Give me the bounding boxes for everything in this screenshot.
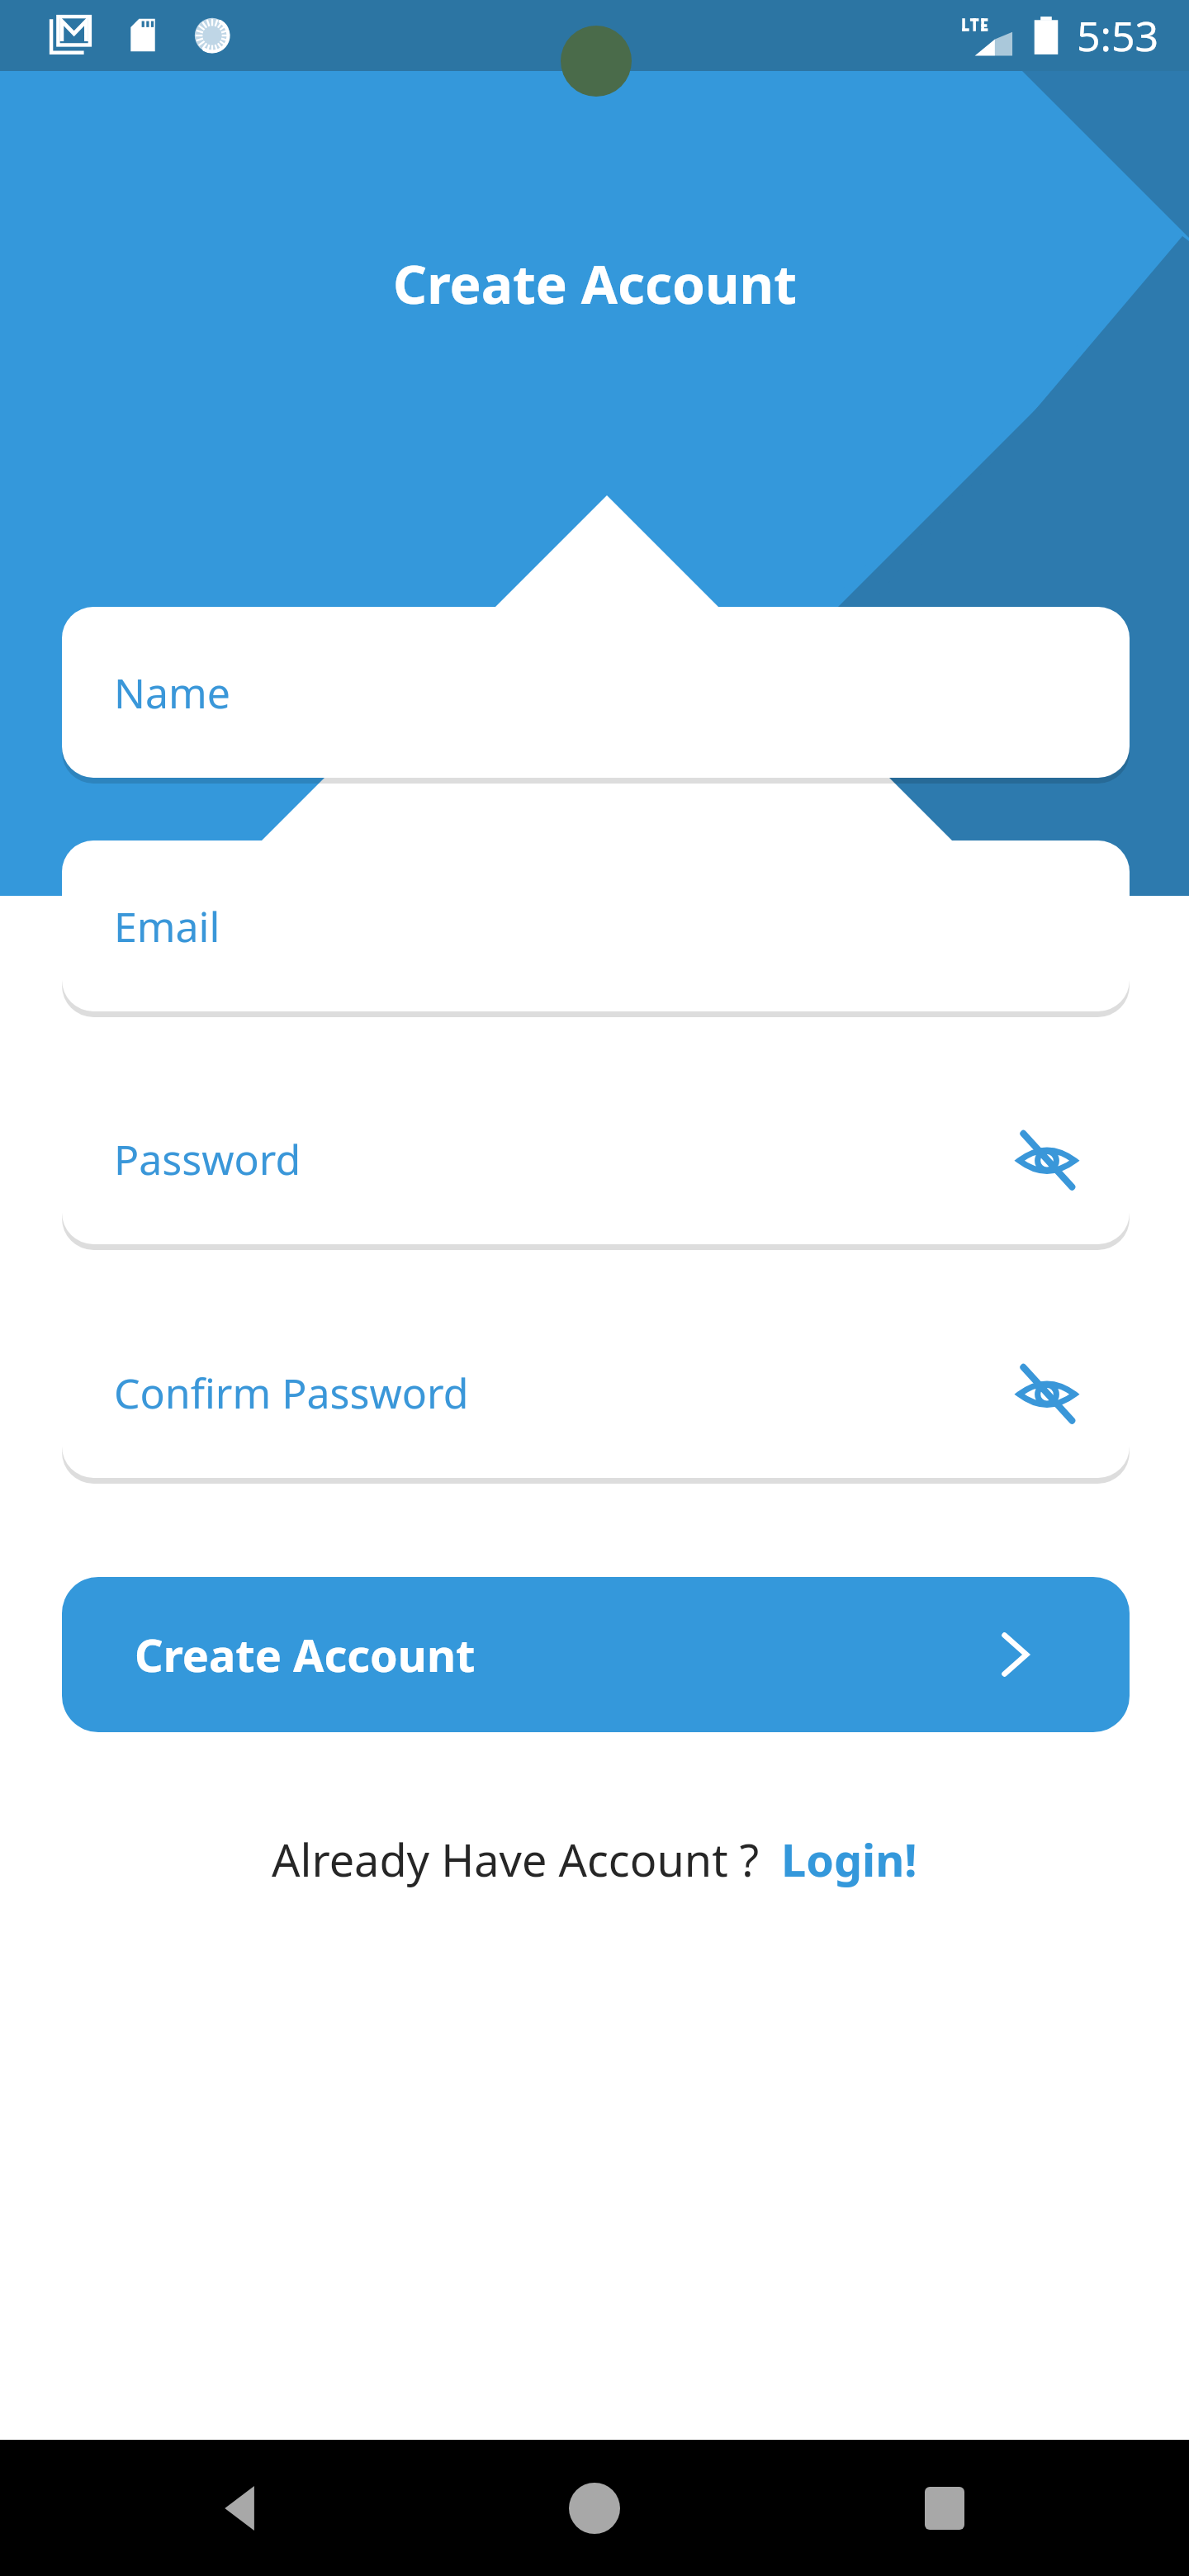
button[interactable]: Login! — [781, 1829, 917, 1890]
staticText: Password — [114, 1131, 301, 1187]
staticText: Create Account — [393, 248, 797, 320]
button[interactable]: Email — [62, 841, 1130, 1011]
staticText: Create Account — [135, 1624, 476, 1685]
staticText: Name — [114, 665, 230, 721]
button[interactable]: Name — [62, 607, 1130, 778]
staticText: Confirm Password — [114, 1365, 469, 1421]
button[interactable]: Create Account — [62, 1577, 1130, 1732]
staticText: Login! — [781, 1829, 917, 1890]
button[interactable]: Show password — [1012, 1125, 1082, 1194]
button[interactable]: Home — [553, 2467, 636, 2550]
button[interactable]: Password — [62, 1073, 1130, 1244]
button[interactable]: Recent apps — [907, 2470, 983, 2546]
button[interactable]: Show password — [1012, 1358, 1082, 1428]
staticText: Email — [114, 898, 220, 954]
staticText: Already Have Account ? — [272, 1829, 760, 1890]
button[interactable]: Back — [206, 2470, 282, 2546]
button[interactable]: Confirm Password — [62, 1307, 1130, 1478]
staticText: 5:53 — [1077, 7, 1159, 64]
